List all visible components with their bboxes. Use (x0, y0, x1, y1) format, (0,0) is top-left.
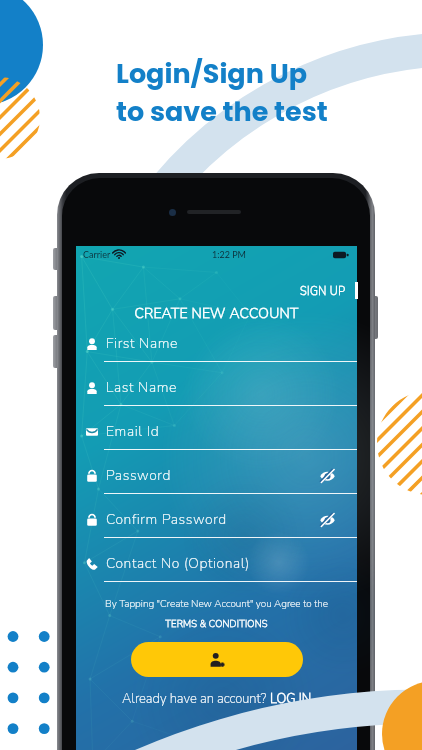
staticText: Contact No (Optional) (106, 554, 250, 573)
staticText: By Tapping "Create New Account" you Agre… (105, 597, 328, 611)
staticText: Carrier (83, 249, 111, 260)
staticText: to save the test (116, 93, 328, 131)
staticText: Login/Sign Up (116, 55, 307, 93)
staticText: 1:22 PM (212, 249, 246, 260)
button[interactable]: Contact No (Optional) (76, 548, 357, 588)
button[interactable]: Password (76, 460, 357, 500)
button[interactable]: First Name (76, 328, 357, 368)
button[interactable]: LOG IN (270, 690, 312, 708)
staticText: Last Name (106, 378, 177, 397)
staticText: Password (106, 466, 171, 485)
button[interactable]: TERMS & CONDITIONS (76, 615, 357, 631)
button[interactable]: Create new account (131, 642, 303, 677)
staticText: CREATE NEW ACCOUNT (134, 304, 299, 323)
button[interactable]: Email Id (76, 416, 357, 456)
staticText: First Name (106, 334, 178, 353)
staticText: LOG IN (270, 690, 312, 708)
button[interactable]: Last Name (76, 372, 357, 412)
button[interactable]: SIGN UP (294, 281, 351, 302)
other: Show password (320, 513, 335, 526)
other: Show password (320, 469, 335, 482)
button[interactable]: Confirm Password (76, 504, 357, 544)
staticText: Confirm Password (106, 510, 227, 529)
staticText: SIGN UP (300, 284, 346, 299)
staticText: Email Id (106, 422, 160, 441)
staticText: TERMS & CONDITIONS (165, 617, 268, 630)
staticText: Already have an account? (122, 690, 270, 708)
